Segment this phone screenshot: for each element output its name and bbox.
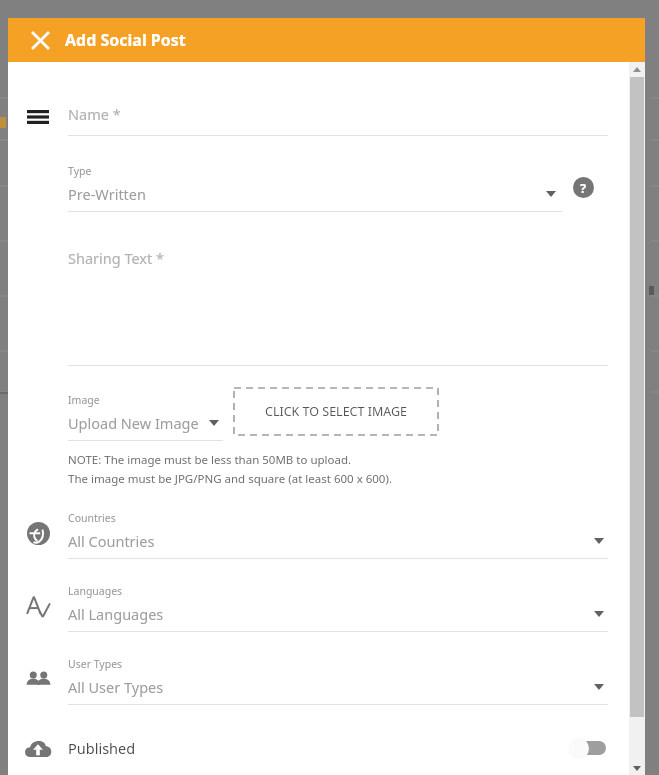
button[interactable]: Image: [68, 393, 223, 441]
staticText: CLICK TO SELECT IMAGE: [265, 403, 408, 420]
button[interactable]: CLICK TO SELECT IMAGE: [234, 388, 438, 435]
staticText: Sharing Text *: [68, 248, 165, 268]
staticText: All Languages: [68, 604, 594, 624]
staticText: ?: [580, 179, 587, 197]
staticText: The image must be JPG/PNG and square (at…: [68, 471, 392, 487]
button[interactable]: Name *: [8, 100, 645, 136]
button[interactable]: Scroll up: [629, 62, 645, 77]
staticText: User Types: [68, 657, 123, 671]
button[interactable]: User Types: [8, 657, 645, 705]
staticText: NOTE: The image must be less than 50MB t…: [68, 452, 352, 468]
button[interactable]: Published toggle: [568, 736, 608, 760]
button[interactable]: Scroll down: [629, 760, 645, 775]
staticText: Image: [68, 393, 100, 407]
staticText: Name *: [68, 104, 121, 124]
staticText: Type: [68, 164, 92, 178]
staticText: Countries: [68, 511, 116, 525]
button[interactable]: Help: [573, 177, 594, 198]
button[interactable]: Close: [25, 25, 55, 55]
staticText: Published: [68, 738, 136, 758]
staticText: Add Social Post: [65, 29, 186, 51]
staticText: All Countries: [68, 531, 594, 551]
button[interactable]: Published: [8, 731, 645, 765]
staticText: Pre-Written: [68, 184, 546, 204]
staticText: Upload New Image: [68, 413, 209, 433]
button[interactable]: Sharing Text *: [68, 248, 608, 366]
staticText: All User Types: [68, 677, 594, 697]
staticText: Languages: [68, 584, 123, 598]
button[interactable]: Type: [68, 164, 562, 212]
button[interactable]: Countries: [8, 511, 645, 559]
button[interactable]: Languages: [8, 584, 645, 632]
